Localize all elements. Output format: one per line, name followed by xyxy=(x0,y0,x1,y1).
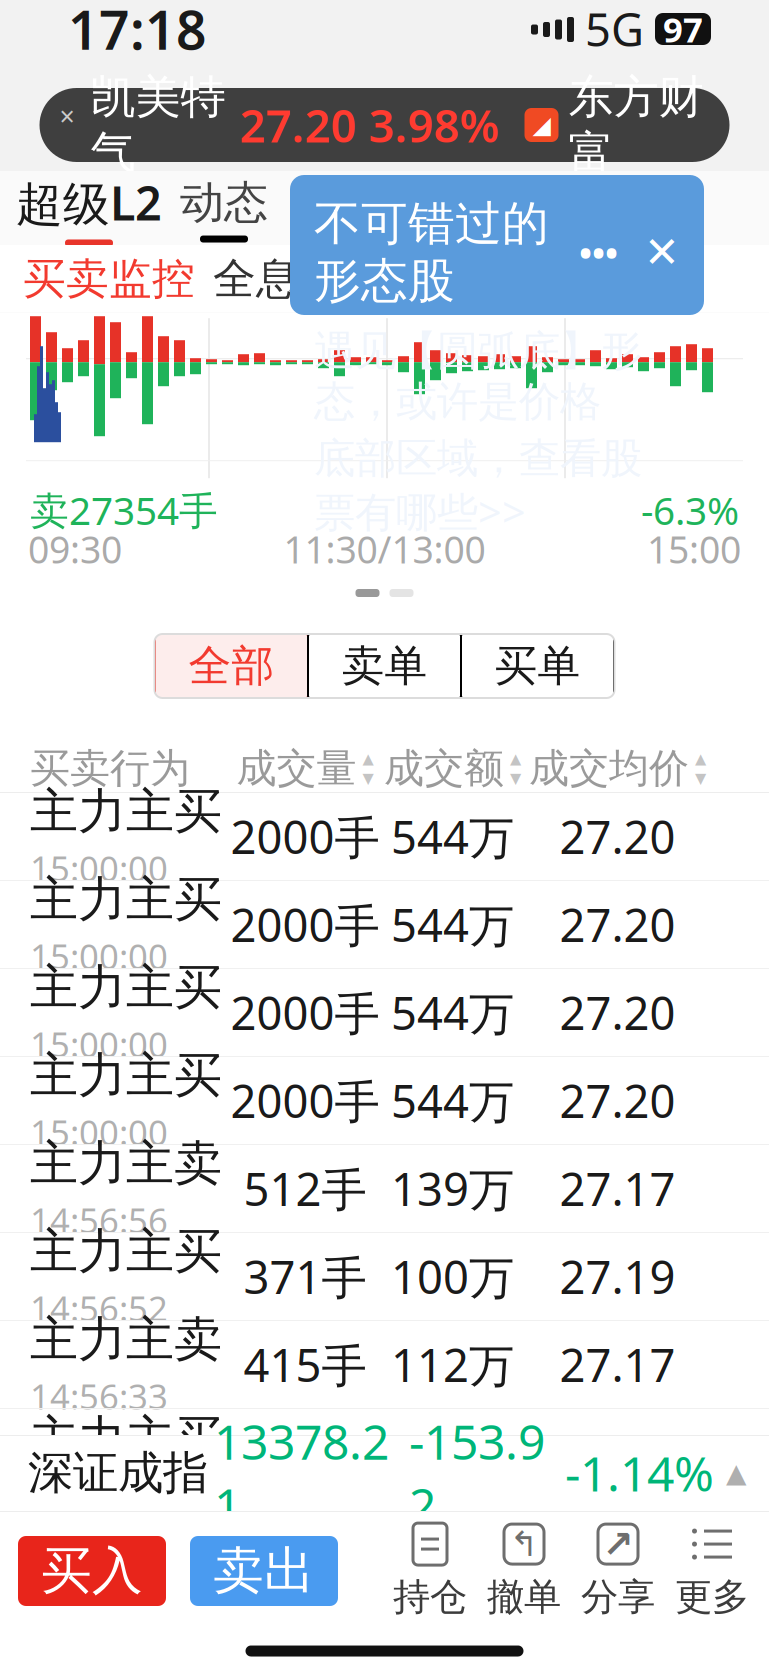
button[interactable]: 更多 xyxy=(665,1516,759,1626)
button[interactable]: 成交均价 xyxy=(525,744,710,793)
staticText: 成交额 xyxy=(384,744,504,793)
staticText: ▲ xyxy=(726,1458,747,1488)
staticText: 544万 xyxy=(391,1070,514,1131)
button[interactable]: 全息队列 xyxy=(204,245,394,313)
button[interactable]: 买单 xyxy=(461,634,614,698)
staticText: 2000手 xyxy=(230,894,379,955)
button[interactable]: 成交量 xyxy=(230,744,380,793)
button[interactable]: 卖出 xyxy=(190,1536,338,1606)
staticText: 15:00:00 xyxy=(30,933,168,979)
staticText: 27.17 xyxy=(559,1334,675,1395)
staticText: 资金 xyxy=(420,175,508,229)
button[interactable]: 凯美特气 行情 xyxy=(39,88,729,162)
button[interactable]: 主力主买 xyxy=(0,1233,769,1320)
staticText: 分享 xyxy=(581,1574,655,1620)
staticText: 主力主买 xyxy=(30,1222,222,1281)
button[interactable]: 主力主卖 xyxy=(0,1321,769,1408)
staticText: 97 xyxy=(663,6,703,52)
staticText: 研报 xyxy=(540,175,628,229)
staticText: ▲ xyxy=(362,750,373,767)
button[interactable]: 研报 xyxy=(524,171,644,245)
staticText: 15:00:00 xyxy=(30,1109,168,1155)
button[interactable]: 主力主买 xyxy=(0,881,769,968)
staticText: 15:00 xyxy=(647,524,741,574)
button[interactable]: 主力主卖 xyxy=(0,1145,769,1232)
button[interactable]: ↰ xyxy=(477,1516,571,1626)
staticText: 13378.21 xyxy=(214,1409,389,1537)
button[interactable]: 资金流向 xyxy=(394,245,584,313)
staticText: 27.19 xyxy=(559,1246,675,1307)
staticText: 17:18 xyxy=(68,0,207,64)
staticText: 544万 xyxy=(391,894,514,955)
staticText: 逐笔 xyxy=(616,253,702,305)
button[interactable]: 买卖监控 xyxy=(14,245,204,313)
staticText: 买卖行为 xyxy=(30,744,190,793)
staticText: 卖出 xyxy=(213,1540,315,1602)
staticText: 512手 xyxy=(243,1158,366,1219)
button[interactable]: 机会 xyxy=(284,171,404,245)
staticText: -153.92 xyxy=(409,1409,545,1537)
staticText: 凯美特气 xyxy=(90,69,225,181)
staticText: 不可错过的形态股 xyxy=(314,195,549,310)
staticText: ↗ xyxy=(602,1523,633,1565)
button[interactable]: 超级L2 xyxy=(14,171,164,245)
button[interactable]: 动态 xyxy=(164,171,284,245)
staticText: 撤单 xyxy=(487,1574,561,1620)
button[interactable]: 不可错过的形态股 xyxy=(290,175,704,315)
staticText: 544万 xyxy=(391,982,514,1043)
staticText: 主力主卖 xyxy=(30,1134,222,1193)
staticText: ◢ xyxy=(532,111,550,139)
staticText: 持仓 xyxy=(393,1574,467,1620)
staticText: 15:00:00 xyxy=(30,845,168,891)
staticText: 买单 xyxy=(494,640,580,692)
staticText: 主力主买 xyxy=(30,1409,222,1468)
button[interactable]: 主力主买 xyxy=(0,793,769,880)
button[interactable]: ↗ xyxy=(571,1516,665,1626)
button[interactable]: 买入 xyxy=(18,1536,166,1606)
staticText: ▼ xyxy=(695,770,706,786)
staticText: 买卖监控 xyxy=(23,253,195,305)
button[interactable]: 主力主买 xyxy=(0,1057,769,1144)
staticText: 544万 xyxy=(391,806,514,867)
staticText: 主力主买 xyxy=(30,782,222,841)
button[interactable]: 逐笔 xyxy=(584,245,734,313)
staticText: 2000手 xyxy=(230,982,379,1043)
staticText: 415手 xyxy=(243,1334,366,1395)
staticText: -1.14% xyxy=(565,1441,714,1505)
staticText: 27.20 xyxy=(559,1070,675,1131)
staticText: 139万 xyxy=(391,1158,514,1219)
staticText: 全息队列 xyxy=(213,253,385,305)
button[interactable]: 主力主买 xyxy=(0,969,769,1056)
staticText: 371手 xyxy=(243,1246,366,1307)
staticText: 底部区域，查看股票有哪些>> xyxy=(314,433,642,539)
staticText: 卖单 xyxy=(341,640,427,692)
button[interactable]: 资金 xyxy=(404,171,524,245)
button[interactable]: 成交额 xyxy=(380,744,525,793)
staticText: 全部 xyxy=(188,640,274,692)
button[interactable]: 全部 xyxy=(155,634,308,698)
staticText: 09:30 xyxy=(28,524,122,574)
staticText: 5G xyxy=(585,0,644,59)
staticText: 更多 xyxy=(675,1574,749,1620)
staticText: 2000手 xyxy=(230,1070,379,1131)
staticText: 14:56:52 xyxy=(30,1285,168,1331)
staticText: 深证成指 xyxy=(28,1445,208,1501)
staticText: 14:56:33 xyxy=(30,1373,168,1419)
staticText: 遇见【圆弧底】形态，或许是价格 xyxy=(314,326,642,427)
staticText: 100万 xyxy=(391,1246,514,1307)
staticText: 主力主买 xyxy=(30,1046,222,1105)
staticText: 买入 xyxy=(41,1540,143,1602)
staticText: 3.98% xyxy=(368,95,499,155)
staticText: 动态 xyxy=(180,175,268,229)
staticText: 11:30/13:00 xyxy=(283,524,485,574)
button[interactable]: 持仓 xyxy=(383,1516,477,1626)
staticText: × xyxy=(59,98,74,134)
staticText: 主力主卖 xyxy=(30,1310,222,1369)
staticText: ▼ xyxy=(362,770,373,786)
button[interactable]: 卖单 xyxy=(308,634,461,698)
staticText: ••• xyxy=(579,229,618,275)
staticText: -6.3% xyxy=(641,484,739,535)
staticText: ↰ xyxy=(509,1524,538,1564)
staticText: 27.20 xyxy=(559,806,675,867)
staticText: 资金流向 xyxy=(403,253,575,305)
